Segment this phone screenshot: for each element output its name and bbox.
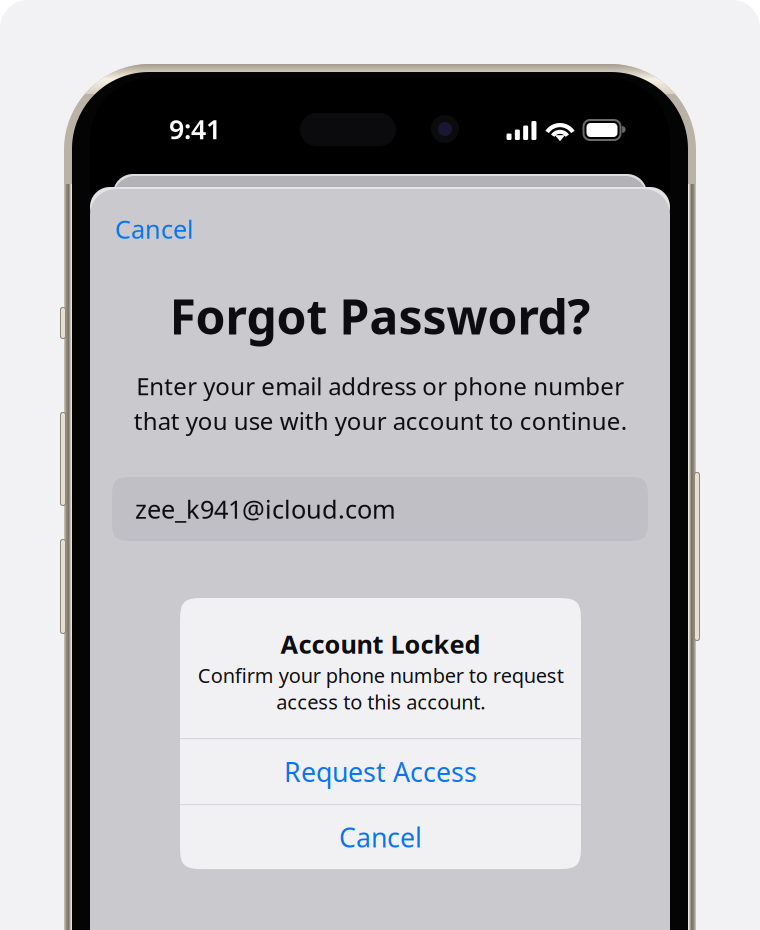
button[interactable]: Request Access [180, 739, 581, 804]
staticText: 9:41 [169, 111, 221, 147]
staticText: zee_k941@icloud.com [135, 492, 396, 526]
staticText: Confirm your phone number to request acc… [197, 662, 563, 715]
staticText: Cancel [115, 212, 194, 246]
staticText: Forgot Password? [169, 284, 590, 348]
staticText: Request Access [284, 754, 477, 789]
button[interactable]: Cancel [180, 805, 581, 869]
staticText: Enter your email address or phone number… [133, 370, 626, 437]
staticText: Account Locked [280, 627, 480, 651]
button[interactable]: Cancel [90, 200, 225, 258]
staticText: Cancel [339, 819, 422, 855]
